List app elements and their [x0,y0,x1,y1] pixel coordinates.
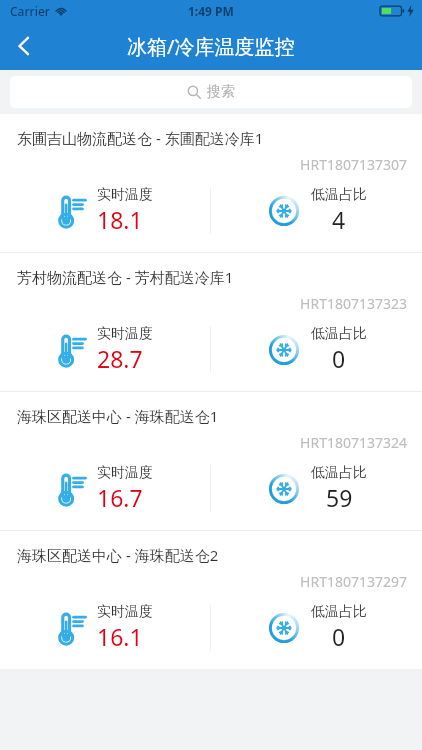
staticText: 实时温度 [97,186,153,204]
staticText: 28.7 [97,343,143,374]
staticText: 海珠区配送中心 - 海珠配送仓1 [17,406,219,426]
staticText: 0 [332,621,346,652]
staticText: 芳村物流配送仓 - 芳村配送冷库1 [17,267,234,287]
staticText: 4 [332,204,346,235]
staticText: 低温占比 [311,464,367,482]
staticText: 低温占比 [311,603,367,621]
staticText: 实时温度 [97,325,153,343]
staticText: Carrier [10,3,50,19]
staticText: 实时温度 [97,603,153,621]
staticText: 1:49 PM [188,3,234,19]
staticText: 搜索 [207,83,235,101]
staticText: 海珠区配送中心 - 海珠配送仓2 [17,545,219,565]
button[interactable]: 东圃吉山物流配送仓 - 东圃配送冷库1 [0,114,422,252]
staticText: 冰箱/冷库温度监控 [127,33,295,60]
staticText: 低温占比 [311,186,367,204]
button[interactable]: 海珠区配送中心 - 海珠配送仓2 [0,531,422,669]
staticText: 18.1 [97,204,143,235]
staticText: 东圃吉山物流配送仓 - 东圃配送冷库1 [17,128,264,148]
staticText: HRT1807137324 [0,433,407,452]
button[interactable]: 海珠区配送中心 - 海珠配送仓1 [0,392,422,530]
button[interactable]: Back [0,22,48,70]
button[interactable]: 芳村物流配送仓 - 芳村配送冷库1 [0,253,422,391]
staticText: HRT1807137307 [0,155,407,174]
staticText: 16.7 [97,482,143,513]
button[interactable]: 搜索 [10,76,412,108]
staticText: HRT1807137297 [0,572,407,591]
staticText: 16.1 [97,621,143,652]
staticText: 0 [332,343,346,374]
staticText: HRT1807137323 [0,294,407,313]
staticText: 实时温度 [97,464,153,482]
staticText: 59 [326,482,353,513]
staticText: 低温占比 [311,325,367,343]
